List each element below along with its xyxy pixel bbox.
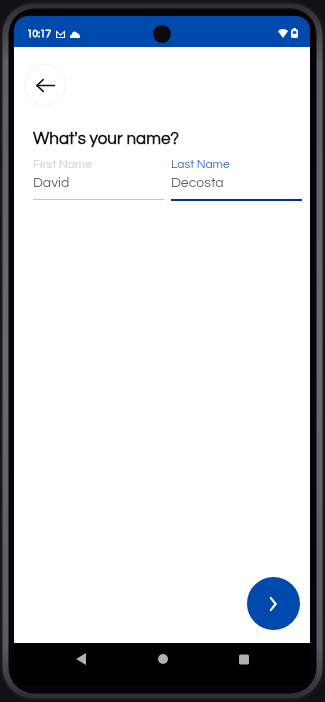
button[interactable]: Home [148, 644, 178, 674]
staticText: Decosta [171, 176, 224, 190]
button[interactable]: Back [66, 644, 96, 674]
button[interactable]: Recents [229, 644, 259, 674]
staticText: David [33, 176, 70, 190]
staticText: What's your name? [33, 130, 179, 148]
button[interactable]: Back [24, 64, 66, 106]
staticText: 10:17 [27, 29, 52, 39]
button[interactable]: Next [247, 577, 300, 630]
button[interactable]: First Name [33, 158, 164, 200]
staticText: First Name [33, 158, 92, 170]
staticText: Last Name [171, 158, 230, 170]
button[interactable]: Last Name [171, 158, 302, 201]
